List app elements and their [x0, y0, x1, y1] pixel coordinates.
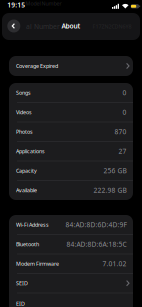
- button[interactable]: Coverage Expired: [9, 56, 133, 76]
- staticText: Wi-Fi Address: [16, 221, 49, 228]
- staticText: 0: [122, 88, 126, 97]
- staticText: Songs: [16, 89, 31, 96]
- staticText: Applications: [16, 148, 45, 155]
- staticText: 222.98 GB: [93, 186, 126, 195]
- staticText: Modem Firmware: [16, 260, 59, 267]
- staticText: EID: [16, 300, 25, 307]
- staticText: About: [61, 22, 80, 30]
- staticText: Capacity: [16, 167, 37, 174]
- staticText: SEID: [16, 280, 28, 287]
- staticText: al Number: [26, 22, 60, 31]
- staticText: 256 GB: [103, 166, 126, 175]
- button[interactable]: [7, 19, 20, 32]
- staticText: F17ZN2CDN6Y8: [92, 23, 131, 30]
- staticText: 7.01.02: [102, 259, 126, 268]
- button[interactable]: SEID: [9, 273, 133, 293]
- staticText: Model Number: [25, 0, 61, 7]
- staticText: 84:AD:8D:6A:18:5C: [66, 240, 126, 249]
- staticText: 27: [118, 147, 126, 156]
- staticText: 84:AD:8D:6D:4D:9F: [65, 220, 126, 229]
- staticText: Coverage Expired: [16, 62, 58, 70]
- staticText: Photos: [16, 128, 33, 135]
- staticText: 0: [122, 108, 126, 117]
- staticText: Available: [16, 187, 37, 194]
- staticText: Videos: [16, 109, 32, 116]
- staticText: 870: [114, 127, 126, 136]
- staticText: Bluetooth: [16, 241, 39, 248]
- staticText: 19:15: [7, 1, 25, 9]
